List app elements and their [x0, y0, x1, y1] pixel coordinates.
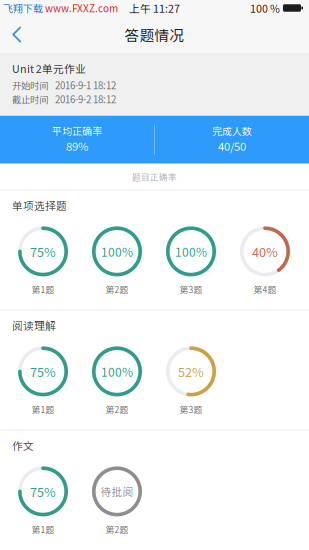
staticText: 题目正确率 — [132, 170, 177, 183]
button[interactable]: 75% — [6, 466, 80, 535]
staticText: 第1题 — [31, 403, 54, 415]
staticText: 75% — [30, 242, 56, 260]
staticText: 89% — [66, 137, 88, 154]
staticText: 第1题 — [31, 523, 54, 535]
button[interactable]: 75% — [6, 346, 80, 415]
staticText: 100 % — [250, 0, 280, 16]
staticText: 第1题 — [31, 283, 54, 295]
staticText: 100% — [101, 243, 133, 260]
staticText: 75% — [30, 362, 56, 380]
staticText: 2016-9-2 18:12 — [55, 92, 116, 106]
staticText: 作文 — [12, 438, 34, 453]
staticText: 截止时间 — [12, 92, 48, 106]
staticText: 第3题 — [179, 283, 202, 295]
button[interactable]: 100% — [80, 226, 154, 295]
staticText: 答题情况 — [124, 24, 184, 45]
staticText: 第3题 — [179, 403, 202, 415]
button[interactable]: Back — [0, 20, 38, 49]
staticText: 上午 11:27 — [129, 0, 180, 16]
staticText: 第4题 — [253, 283, 276, 295]
staticText: Unit 2单元作业 — [12, 61, 86, 76]
staticText: 飞翔下载 — [3, 1, 43, 15]
staticText: 平均正确率 — [52, 123, 102, 138]
staticText: 第2题 — [105, 523, 128, 535]
staticText: 75% — [30, 482, 56, 500]
button[interactable]: 100% — [154, 226, 228, 295]
button[interactable]: 52% — [154, 346, 228, 415]
staticText: 开始时间 — [12, 78, 48, 92]
staticText: 待批阅 — [100, 484, 133, 499]
staticText: 100% — [175, 243, 207, 260]
button[interactable]: 40% — [228, 226, 302, 295]
staticText: 阅读理解 — [12, 318, 56, 333]
staticText: 40% — [252, 242, 278, 260]
button[interactable]: 75% — [6, 226, 80, 295]
staticText: 52% — [178, 362, 204, 380]
staticText: 100% — [101, 363, 133, 380]
staticText: 完成人数 — [212, 123, 252, 138]
staticText: www.FXXZ.com — [43, 1, 118, 15]
staticText: 第2题 — [105, 283, 128, 295]
staticText: 单项选择题 — [12, 198, 67, 213]
button[interactable]: 待批阅 — [80, 466, 154, 535]
staticText: 第2题 — [105, 403, 128, 415]
staticText: 40/50 — [218, 137, 246, 154]
button[interactable]: 100% — [80, 346, 154, 415]
staticText: 2016-9-1 18:12 — [55, 78, 116, 92]
